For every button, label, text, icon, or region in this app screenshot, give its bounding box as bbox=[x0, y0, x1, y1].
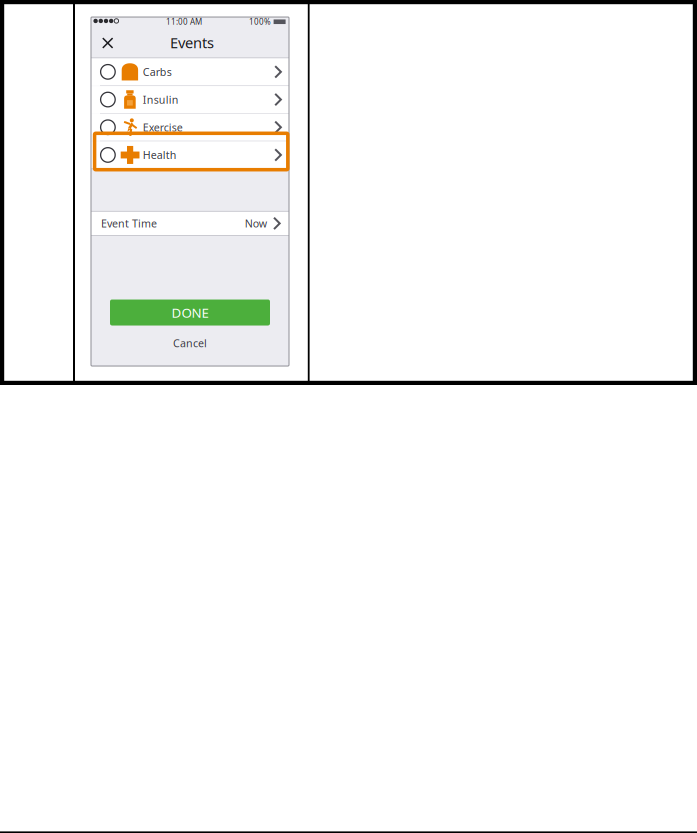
button[interactable]: Insulin bbox=[91, 86, 289, 113]
button[interactable]: Event Time bbox=[91, 212, 289, 235]
staticText: DONE bbox=[171, 304, 208, 321]
staticText: Event Time bbox=[101, 216, 157, 230]
button[interactable]: Exercise bbox=[91, 114, 289, 141]
staticText: Now bbox=[245, 216, 267, 230]
staticText: Insulin bbox=[143, 92, 179, 107]
button[interactable]: Health bbox=[91, 141, 289, 168]
staticText: Carbs bbox=[143, 65, 172, 79]
staticText: Health bbox=[143, 148, 177, 162]
staticText: 11:00 AM bbox=[166, 16, 202, 27]
staticText: Cancel bbox=[173, 336, 207, 350]
button[interactable]: DONE bbox=[110, 299, 270, 325]
button[interactable]: Cancel bbox=[160, 336, 220, 350]
staticText: Events bbox=[170, 33, 214, 52]
staticText: 100% bbox=[249, 16, 271, 27]
staticText: Exercise bbox=[143, 120, 183, 134]
button[interactable]: Close bbox=[96, 30, 119, 54]
button[interactable]: Carbs bbox=[91, 58, 289, 85]
